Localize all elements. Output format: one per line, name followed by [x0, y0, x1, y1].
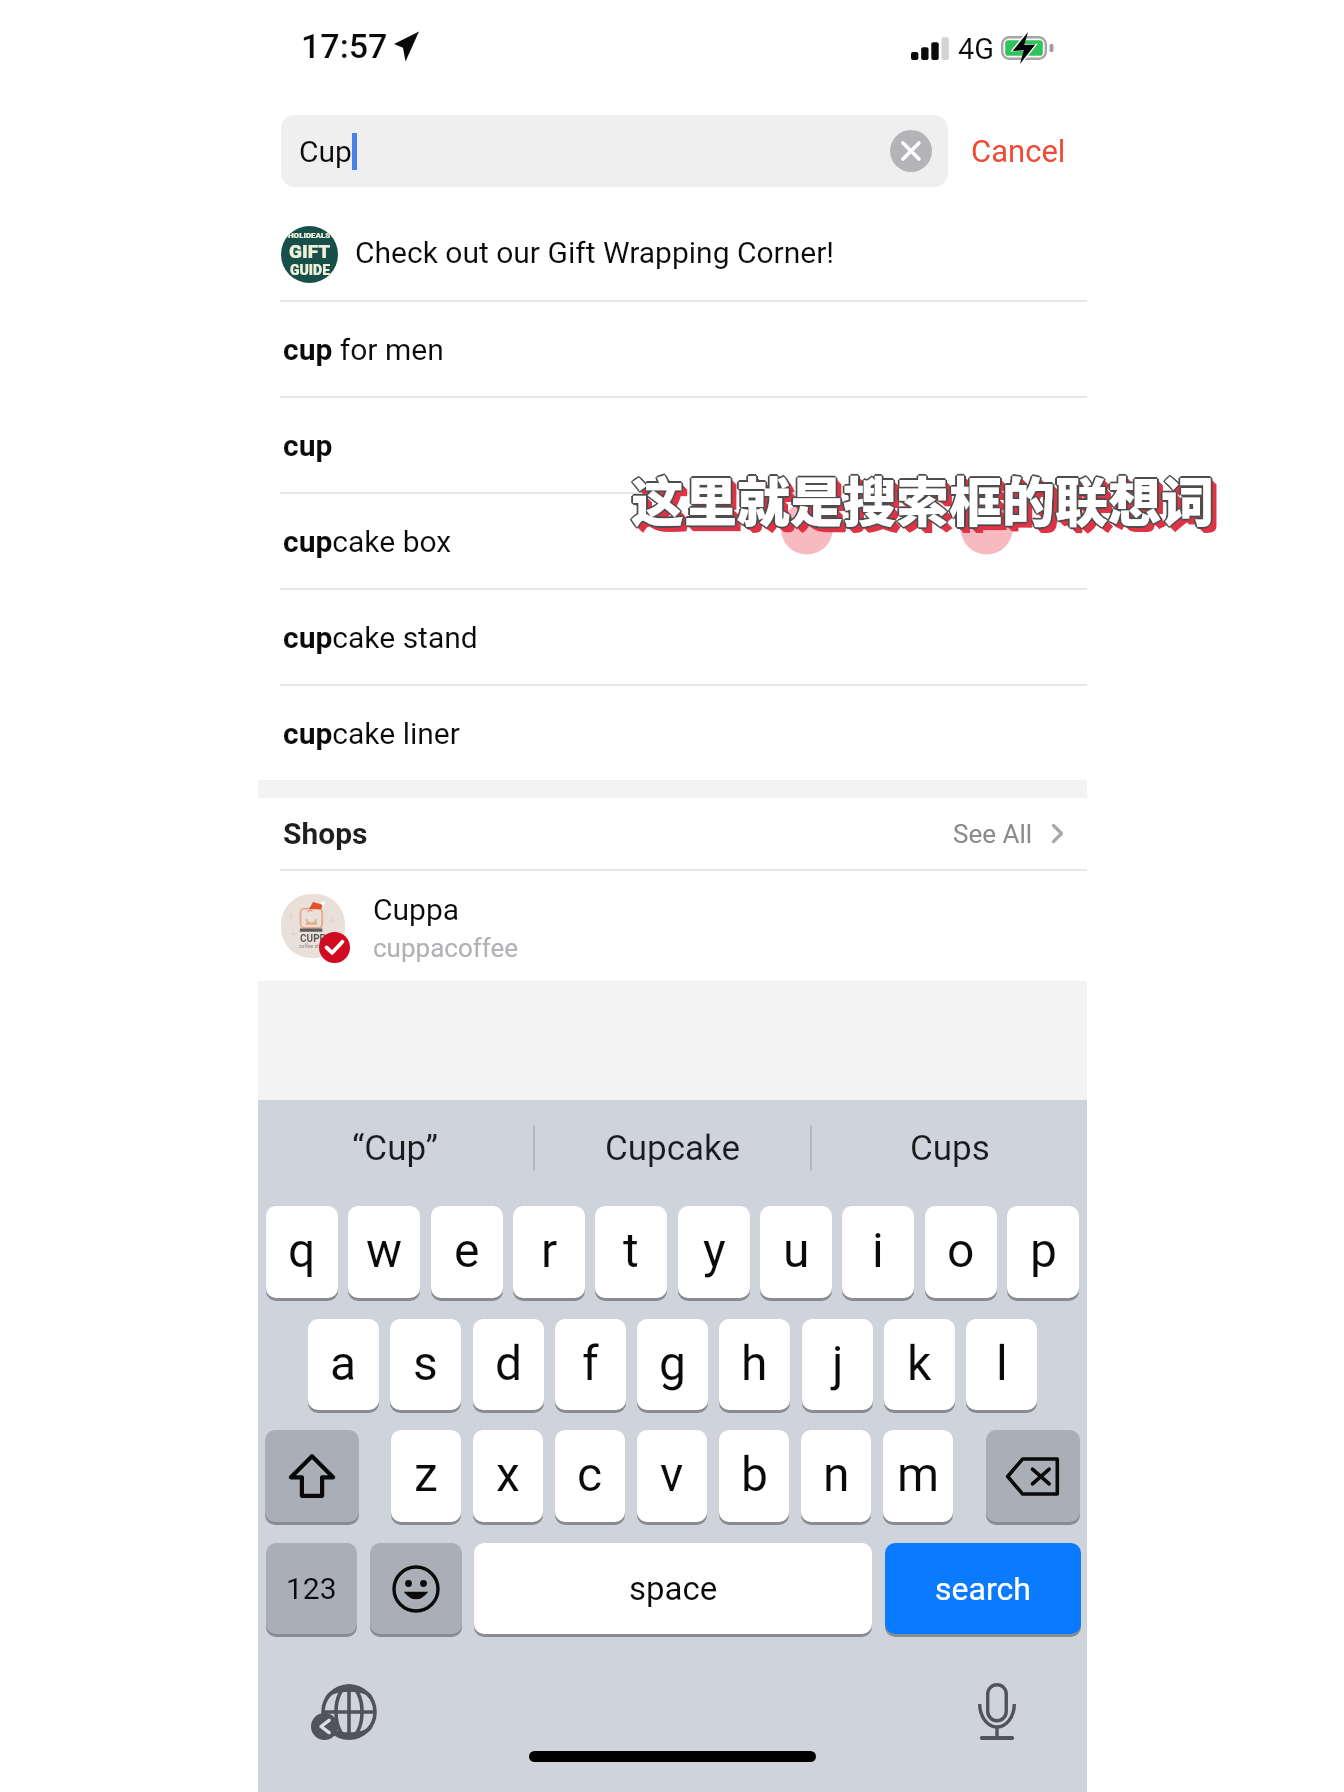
button[interactable]: space — [474, 1543, 872, 1634]
staticText: b — [741, 1446, 768, 1502]
button[interactable]: p — [1007, 1206, 1079, 1298]
button[interactable]: y — [678, 1206, 750, 1298]
staticText: 这里就是搜索框的联想词 — [631, 463, 1214, 540]
staticText: 这里就是搜索框的联想词 — [631, 461, 1214, 538]
button[interactable]: i — [842, 1206, 914, 1298]
staticText: 这里就是搜索框的联想词 — [637, 467, 1220, 544]
button[interactable]: l — [966, 1319, 1037, 1410]
button[interactable]: j — [802, 1319, 873, 1410]
staticText: 123 — [286, 1571, 337, 1606]
staticText: search — [935, 1570, 1031, 1608]
button[interactable]: c — [555, 1430, 625, 1522]
button[interactable]: f — [555, 1319, 626, 1410]
staticText: GIFT — [289, 240, 331, 262]
staticText: Cancel — [971, 133, 1066, 169]
staticText: 这里就是搜索框的联想词 — [632, 460, 1215, 537]
staticText: Check out our Gift Wrapping Corner! — [355, 235, 835, 270]
staticText: q — [288, 1222, 316, 1278]
button[interactable]: cupcake box — [258, 494, 1087, 588]
button[interactable]: Cancel — [971, 115, 1071, 187]
staticText: k — [907, 1335, 932, 1391]
staticText: 这里就是搜索框的联想词 — [635, 465, 1218, 542]
button[interactable]: q — [266, 1206, 338, 1298]
staticText: h — [741, 1335, 768, 1391]
button[interactable]: Clear text — [890, 130, 932, 172]
button[interactable]: Dictation — [978, 1683, 1016, 1740]
staticText: 这里就是搜索框的联想词 — [632, 462, 1215, 539]
staticText: m — [897, 1446, 940, 1502]
button[interactable]: s — [390, 1319, 461, 1410]
staticText: 4G — [958, 32, 995, 66]
staticText: g — [659, 1335, 686, 1391]
button[interactable]: CUPPA — [258, 871, 1087, 981]
button[interactable]: b — [719, 1430, 789, 1522]
button[interactable]: cup — [258, 398, 1087, 492]
button[interactable]: “Cup” — [258, 1100, 533, 1196]
staticText: 这里就是搜索框的联想词 — [633, 463, 1216, 540]
button[interactable]: Backspace — [986, 1430, 1080, 1522]
staticText: cupcake box — [283, 524, 452, 559]
button[interactable]: n — [801, 1430, 871, 1522]
staticText: 这里就是搜索框的联想词 — [631, 459, 1214, 536]
staticText: s — [413, 1335, 438, 1391]
staticText: c — [577, 1446, 603, 1502]
button[interactable]: Cup — [281, 115, 948, 187]
button[interactable]: Shift — [265, 1430, 359, 1522]
staticText: r — [541, 1222, 558, 1278]
button[interactable]: Cupcake — [535, 1100, 810, 1196]
button[interactable]: r — [513, 1206, 585, 1298]
button[interactable]: cupcake liner — [258, 686, 1087, 780]
button[interactable]: z — [391, 1430, 461, 1522]
staticText: a — [330, 1335, 357, 1391]
button[interactable]: Numbers — [266, 1543, 357, 1634]
staticText: e — [454, 1222, 480, 1278]
button[interactable]: Cups — [812, 1100, 1087, 1196]
staticText: w — [366, 1222, 403, 1278]
button[interactable]: w — [348, 1206, 420, 1298]
button[interactable]: search — [885, 1543, 1081, 1634]
staticText: cupcake liner — [283, 716, 460, 751]
button[interactable]: Emoji — [370, 1543, 462, 1634]
button[interactable]: cup for men — [258, 302, 1087, 396]
staticText: i — [872, 1222, 884, 1278]
staticText: n — [823, 1446, 850, 1502]
staticText: p — [1030, 1222, 1057, 1278]
button[interactable]: d — [473, 1319, 544, 1410]
button[interactable]: o — [925, 1206, 997, 1298]
button[interactable]: HOLIDEALS — [258, 204, 1087, 300]
staticText: y — [703, 1222, 726, 1278]
staticText: “Cup” — [352, 1128, 439, 1169]
staticText: 这里就是搜索框的联想词 — [629, 461, 1212, 538]
staticText: v — [660, 1446, 684, 1502]
staticText: cup for men — [283, 332, 444, 367]
staticText: cup — [283, 428, 333, 463]
button[interactable]: x — [473, 1430, 543, 1522]
button[interactable]: m — [883, 1430, 953, 1522]
staticText: HOLIDEALS — [288, 231, 331, 240]
staticText: l — [996, 1335, 1008, 1391]
button[interactable]: k — [884, 1319, 955, 1410]
button[interactable]: Shops — [258, 798, 1087, 869]
staticText: 这里就是搜索框的联想词 — [633, 461, 1216, 538]
staticText: CUPPA — [300, 933, 332, 945]
button[interactable]: t — [595, 1206, 667, 1298]
button[interactable]: a — [308, 1319, 379, 1410]
button[interactable]: g — [637, 1319, 708, 1410]
button[interactable]: Next keyboard — [311, 1685, 376, 1741]
staticText: cuppacoffee — [373, 933, 519, 963]
staticText: u — [783, 1222, 810, 1278]
staticText: t — [623, 1222, 639, 1278]
staticText: space — [629, 1569, 718, 1608]
staticText: Cupcake — [605, 1128, 741, 1169]
button[interactable]: e — [431, 1206, 503, 1298]
staticText: Cups — [910, 1128, 990, 1169]
button[interactable]: cupcake stand — [258, 590, 1087, 684]
staticText: See All — [953, 819, 1033, 849]
staticText: o — [947, 1222, 975, 1278]
button[interactable]: v — [637, 1430, 707, 1522]
staticText: d — [495, 1335, 523, 1391]
button[interactable]: u — [760, 1206, 832, 1298]
button[interactable]: h — [719, 1319, 790, 1410]
staticText: 这里就是搜索框的联想词 — [634, 464, 1217, 541]
staticText: j — [832, 1335, 844, 1391]
